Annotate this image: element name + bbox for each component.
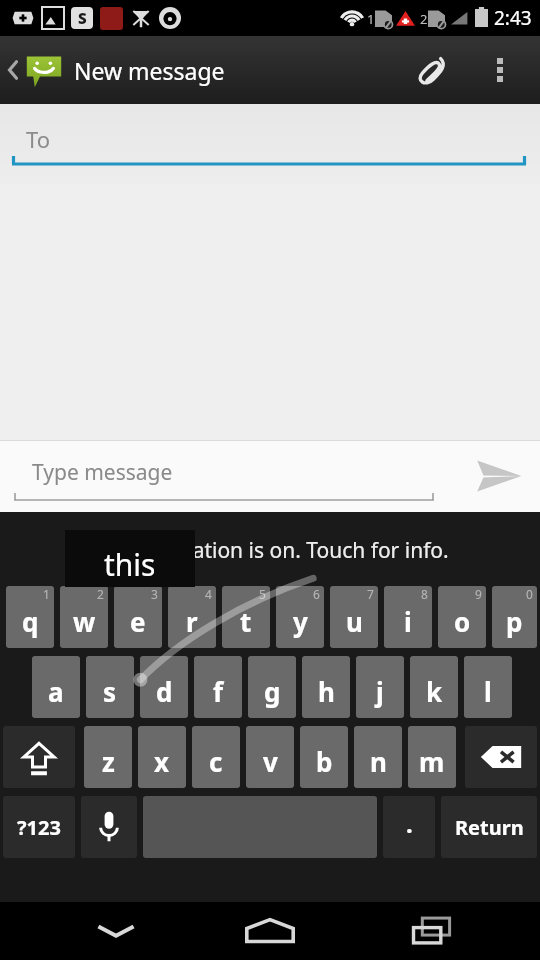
staticText: y <box>293 604 308 639</box>
staticText: r <box>186 604 198 639</box>
button[interactable]: Navigate up <box>0 40 68 100</box>
button[interactable]: z <box>84 726 132 788</box>
button[interactable]: 3 <box>114 586 162 648</box>
button[interactable]: 5 <box>222 586 270 648</box>
button[interactable]: 2 <box>60 586 108 648</box>
staticText: S <box>78 8 87 28</box>
staticText: i <box>404 604 412 639</box>
staticText: To <box>26 124 51 154</box>
staticText: m <box>419 744 445 779</box>
staticText: 3 <box>151 586 158 602</box>
staticText: 1 <box>43 586 50 602</box>
staticText: k <box>426 674 443 709</box>
button[interactable]: ?123 <box>3 796 75 858</box>
button[interactable]: 0 <box>492 586 537 648</box>
staticText: 2 <box>97 586 104 602</box>
button[interactable]: Home <box>241 902 299 960</box>
button[interactable]: To <box>0 104 540 184</box>
button[interactable]: c <box>192 726 240 788</box>
button[interactable]: v <box>246 726 294 788</box>
staticText: q <box>22 604 39 639</box>
staticText: e <box>130 604 146 639</box>
staticText: d <box>156 674 173 709</box>
staticText: g <box>264 674 281 709</box>
staticText: h <box>318 674 335 709</box>
staticText: o <box>454 604 471 639</box>
button[interactable]: 8 <box>384 586 432 648</box>
button[interactable]: Backspace <box>465 726 537 788</box>
button[interactable]: 1 <box>6 586 54 648</box>
staticText: 1 <box>367 10 375 28</box>
staticText: New message <box>74 55 225 86</box>
button[interactable]: Voice input <box>81 796 137 858</box>
staticText: v <box>263 744 278 779</box>
staticText: 9 <box>475 586 482 602</box>
staticText: 2:43 <box>494 5 532 31</box>
staticText: 2 <box>420 10 428 28</box>
staticText: 8 <box>421 586 428 602</box>
button[interactable]: Hide keyboard <box>88 903 144 959</box>
staticText: this <box>104 544 156 585</box>
staticText: t <box>240 604 252 639</box>
button[interactable]: Send <box>466 444 530 508</box>
button[interactable]: b <box>300 726 348 788</box>
button[interactable]: More options <box>476 46 524 94</box>
button[interactable]: 9 <box>438 586 486 648</box>
button[interactable]: Attach <box>404 44 456 96</box>
staticText: b <box>316 744 333 779</box>
staticText: 7 <box>367 586 374 602</box>
button[interactable]: x <box>138 726 186 788</box>
button[interactable]: . <box>383 796 435 858</box>
staticText: c <box>209 744 223 779</box>
staticText: Type message <box>32 458 173 487</box>
button[interactable]: h <box>302 656 350 718</box>
button[interactable]: 4 <box>168 586 216 648</box>
button[interactable]: 6 <box>276 586 324 648</box>
button[interactable]: s <box>86 656 134 718</box>
button[interactable]: f <box>194 656 242 718</box>
staticText: z <box>102 744 115 779</box>
button[interactable]: j <box>356 656 404 718</box>
button[interactable]: m <box>408 726 456 788</box>
staticText: s <box>103 674 117 709</box>
staticText: p <box>506 604 523 639</box>
button[interactable]: k <box>410 656 458 718</box>
button[interactable]: Shift <box>3 726 75 788</box>
button[interactable]: 7 <box>330 586 378 648</box>
staticText: u <box>346 604 363 639</box>
staticText: l <box>484 674 492 709</box>
staticText: 4 <box>205 586 212 602</box>
button[interactable]: g <box>248 656 296 718</box>
staticText: 5 <box>259 586 266 602</box>
staticText: 0 <box>526 586 533 602</box>
button[interactable]: Personalisation is on. Touch for info. <box>91 536 449 565</box>
button[interactable]: a <box>32 656 80 718</box>
button[interactable]: Return <box>441 796 537 858</box>
staticText: w <box>73 604 96 639</box>
staticText: ?123 <box>17 814 61 841</box>
staticText: a <box>48 674 64 709</box>
button[interactable]: n <box>354 726 402 788</box>
button[interactable]: l <box>464 656 512 718</box>
staticText: n <box>370 744 387 779</box>
staticText: . <box>406 807 413 840</box>
button[interactable]: Type message <box>14 450 434 502</box>
button[interactable]: Recent apps <box>404 903 460 959</box>
staticText: x <box>154 744 170 779</box>
staticText: f <box>213 674 224 709</box>
staticText: Return <box>455 814 524 841</box>
staticText: 6 <box>313 586 320 602</box>
button[interactable]: d <box>140 656 188 718</box>
staticText: j <box>376 674 384 709</box>
